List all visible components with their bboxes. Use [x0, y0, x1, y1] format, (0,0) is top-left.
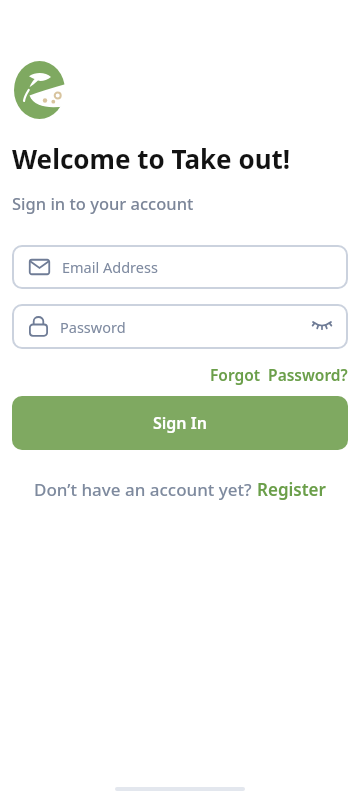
button[interactable]: Sign In — [12, 396, 348, 450]
button[interactable]: Don’t have an account yet? — [12, 478, 348, 501]
staticText: Sign In — [153, 412, 207, 434]
staticText: Password — [60, 317, 126, 337]
button[interactable] — [312, 320, 332, 333]
button[interactable]: Forgot Password? — [210, 364, 348, 385]
button[interactable]: Password — [12, 304, 348, 349]
button[interactable]: Email Address — [12, 245, 348, 289]
staticText: Sign in to your account — [12, 192, 194, 214]
staticText: Register — [257, 478, 326, 501]
staticText: Email Address — [62, 257, 158, 277]
staticText: Don’t have an account yet? — [34, 478, 257, 501]
staticText: Welcome to Take out! — [12, 141, 291, 176]
